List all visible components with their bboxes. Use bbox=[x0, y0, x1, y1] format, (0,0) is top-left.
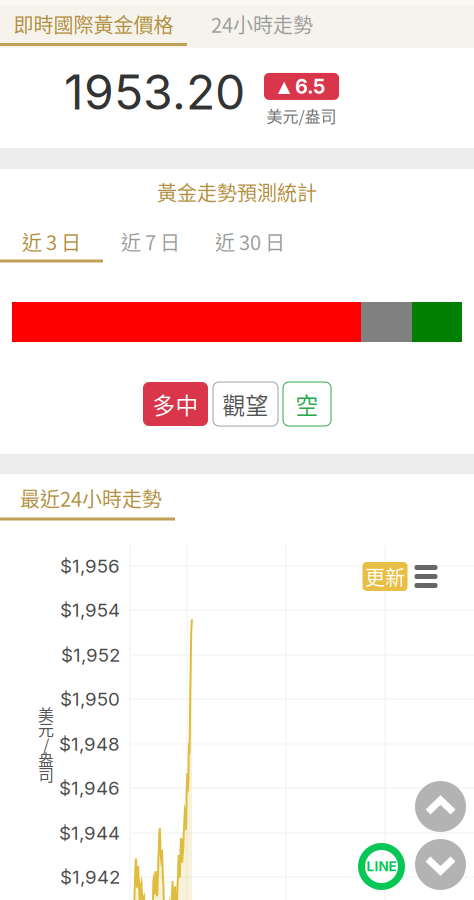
staticText: 24小時走勢 bbox=[211, 9, 313, 38]
staticText: 美 bbox=[38, 702, 54, 726]
staticText: $1,942 bbox=[60, 866, 120, 888]
staticText: 1953.20 bbox=[64, 63, 245, 121]
staticText: 最近24小時走勢 bbox=[20, 483, 162, 512]
staticText: 司 bbox=[38, 762, 54, 786]
button[interactable]: 觀望 bbox=[213, 382, 278, 426]
button[interactable]: Scroll to bottom bbox=[415, 839, 466, 890]
staticText: 觀望 bbox=[222, 388, 268, 420]
staticText: 近 30 日 bbox=[215, 227, 285, 256]
staticText: ▲ bbox=[278, 77, 290, 96]
staticText: 盎 bbox=[38, 747, 54, 771]
button[interactable]: 近 7 日 bbox=[103, 219, 198, 264]
staticText: 近 7 日 bbox=[121, 227, 180, 256]
staticText: $1,946 bbox=[59, 777, 120, 799]
staticText: 6.5 bbox=[295, 74, 325, 98]
button[interactable]: 最近24小時走勢 bbox=[0, 474, 175, 522]
button[interactable]: 近 30 日 bbox=[198, 219, 302, 264]
staticText: 近 3 日 bbox=[22, 227, 81, 256]
staticText: $1,948 bbox=[59, 733, 120, 755]
staticText: $1,956 bbox=[60, 555, 120, 577]
button[interactable]: Scroll to top bbox=[415, 781, 466, 832]
button[interactable]: Chart menu bbox=[414, 565, 437, 588]
staticText: 空 bbox=[295, 388, 318, 420]
button[interactable]: 多中 bbox=[143, 382, 208, 426]
staticText: 黃金走勢預測統計 bbox=[157, 177, 317, 206]
staticText: 即時國際黃金價格 bbox=[13, 9, 173, 38]
button[interactable]: 即時國際黃金價格 bbox=[0, 0, 187, 48]
staticText: 更新 bbox=[365, 562, 405, 591]
staticText: / bbox=[43, 732, 49, 756]
staticText: $1,944 bbox=[59, 822, 120, 844]
staticText: 元 bbox=[38, 717, 54, 741]
button[interactable]: 更新 bbox=[362, 562, 407, 591]
staticText: 多中 bbox=[152, 388, 198, 420]
button[interactable]: 空 bbox=[283, 382, 331, 426]
staticText: 美元/盎司 bbox=[266, 104, 336, 127]
button[interactable]: Share on LINE bbox=[358, 843, 405, 890]
staticText: $1,950 bbox=[60, 688, 120, 710]
staticText: $1,954 bbox=[60, 599, 120, 621]
button[interactable]: 近 3 日 bbox=[0, 219, 103, 264]
staticText: $1,952 bbox=[61, 644, 120, 666]
button[interactable]: 24小時走勢 bbox=[187, 0, 474, 48]
staticText: LINE bbox=[366, 858, 396, 874]
